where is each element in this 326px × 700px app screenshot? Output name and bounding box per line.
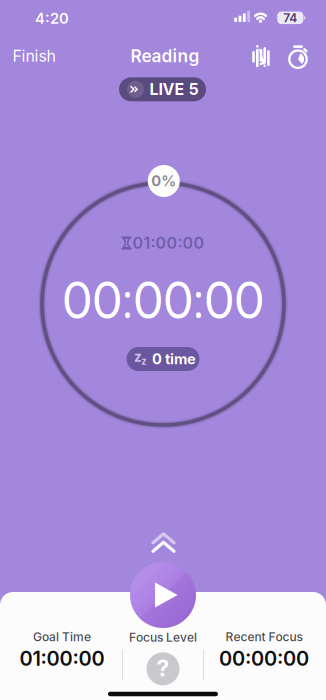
staticText: 4:20 bbox=[35, 10, 69, 27]
staticText: z bbox=[134, 349, 142, 365]
button[interactable]: Timer bbox=[282, 42, 314, 74]
staticText: 01:00:00 bbox=[132, 234, 204, 252]
staticText: 0 time bbox=[152, 350, 196, 368]
button[interactable]: Focus Level bbox=[123, 624, 203, 686]
staticText: Reading bbox=[130, 46, 199, 66]
staticText: 00:00:00 bbox=[62, 267, 264, 331]
staticText: ? bbox=[156, 655, 169, 682]
button[interactable]: LIVE 5 bbox=[119, 77, 206, 101]
staticText: Finish bbox=[12, 47, 55, 65]
staticText: LIVE 5 bbox=[149, 80, 198, 99]
button[interactable]: Finish bbox=[6, 41, 61, 71]
button[interactable]: Start bbox=[130, 562, 196, 628]
staticText: 74 bbox=[283, 11, 297, 25]
staticText: Goal Time bbox=[33, 630, 91, 644]
staticText: Recent Focus bbox=[225, 630, 302, 644]
staticText: z bbox=[141, 356, 146, 367]
staticText: 0% bbox=[151, 172, 176, 190]
button[interactable]: Expand bbox=[149, 532, 177, 554]
button[interactable]: Goal Time bbox=[12, 624, 112, 672]
staticText: Focus Level bbox=[129, 630, 197, 645]
staticText: 00:00:00 bbox=[219, 647, 309, 670]
button[interactable]: White noise bbox=[245, 44, 277, 72]
button[interactable]: Recent Focus bbox=[214, 624, 314, 672]
staticText: 01:00:00 bbox=[19, 647, 104, 670]
button[interactable]: z bbox=[126, 347, 199, 371]
